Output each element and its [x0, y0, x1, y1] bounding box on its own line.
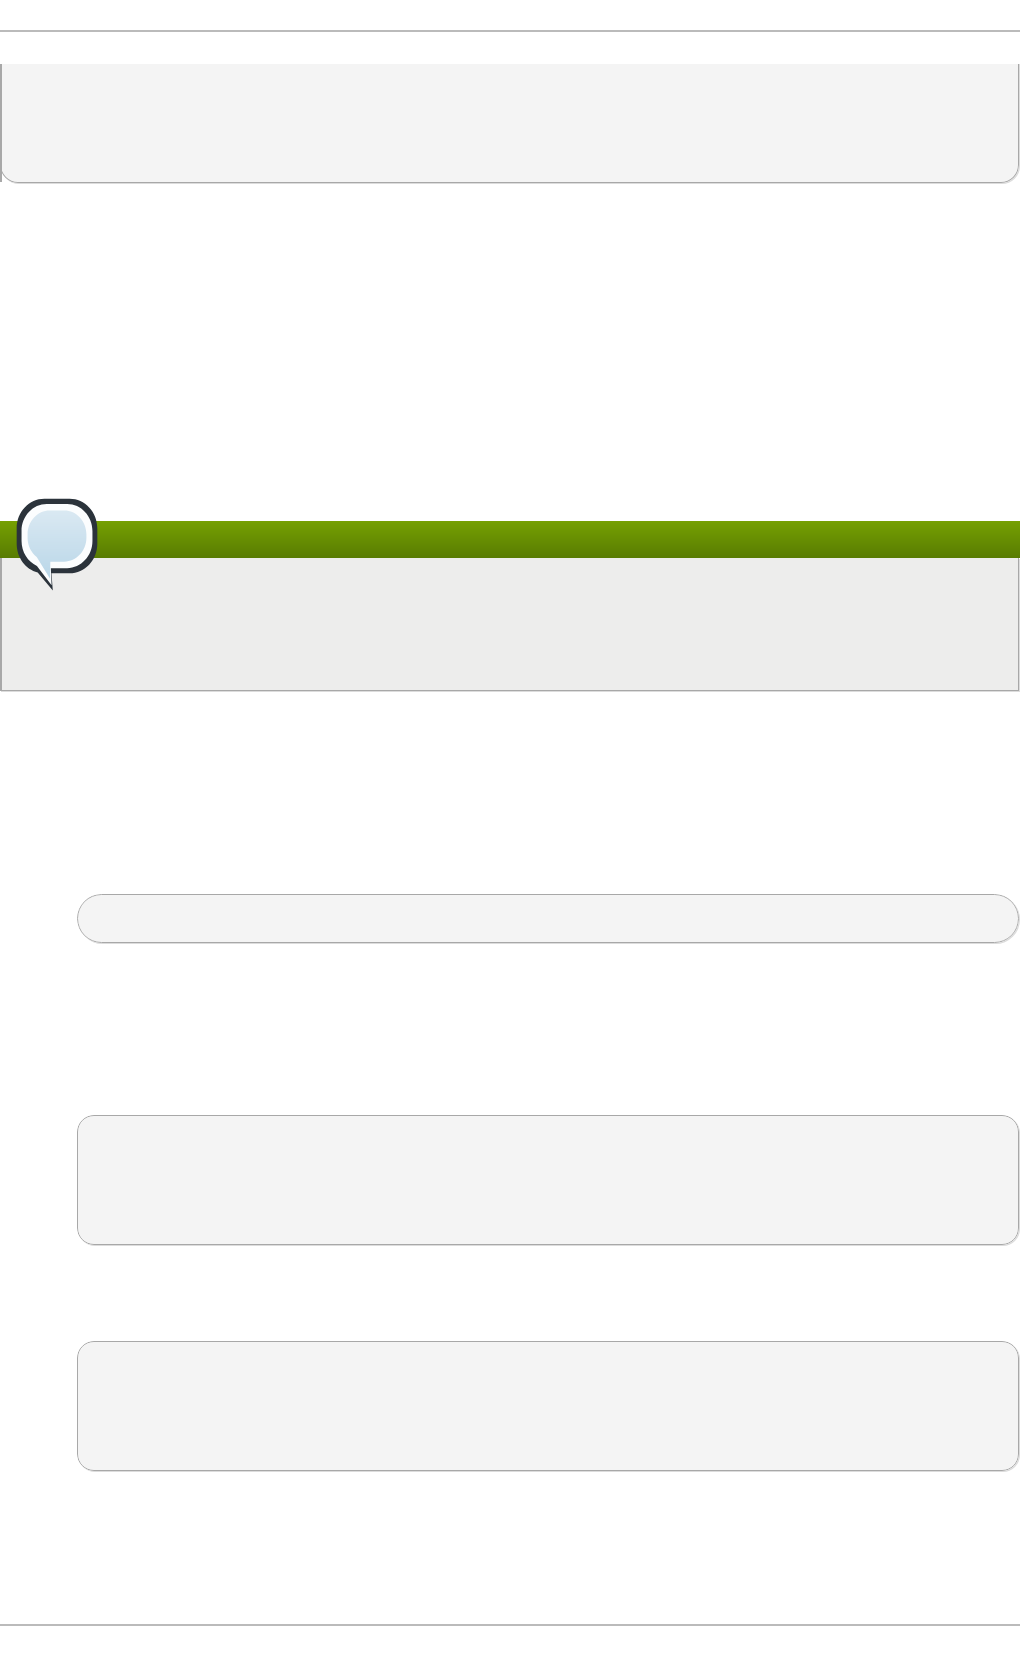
button[interactable]: [0, 521, 1019, 691]
button[interactable]: Comments: [15, 497, 99, 603]
button[interactable]: [0, 44, 1019, 183]
button[interactable]: [77, 1115, 1019, 1245]
button[interactable]: [77, 894, 1019, 943]
button[interactable]: [77, 1341, 1019, 1471]
